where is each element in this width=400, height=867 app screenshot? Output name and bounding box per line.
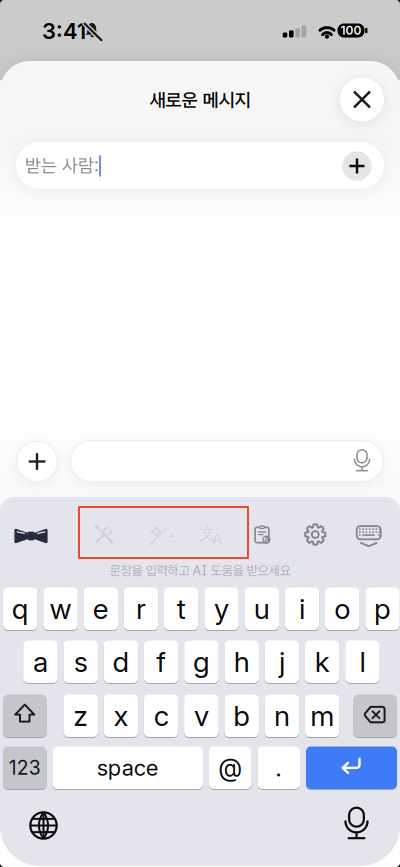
staticText: x <box>113 699 128 733</box>
staticText: s <box>74 645 88 679</box>
button[interactable]: 文 <box>191 514 231 554</box>
button[interactable]: e <box>83 587 118 630</box>
staticText: h <box>234 645 250 679</box>
button[interactable]: . <box>257 746 300 789</box>
button[interactable]: 받는 사람: <box>16 142 384 189</box>
button[interactable] <box>84 514 124 554</box>
staticText: A <box>264 535 269 544</box>
staticText: . <box>275 753 282 782</box>
button[interactable]: t <box>164 587 198 630</box>
staticText: 100 <box>340 23 361 38</box>
staticText: space <box>97 754 159 781</box>
button[interactable]: j <box>265 640 299 683</box>
button[interactable] <box>16 441 58 482</box>
button[interactable]: g <box>184 640 219 683</box>
staticText: f <box>156 645 166 679</box>
button[interactable]: b <box>224 694 259 737</box>
button[interactable] <box>3 694 46 737</box>
button[interactable]: w <box>43 587 78 630</box>
staticText: y <box>214 592 229 626</box>
staticText: 3:41 <box>42 18 86 44</box>
button[interactable]: p <box>365 587 400 630</box>
staticText: k <box>315 645 330 679</box>
button[interactable]: s <box>63 640 98 683</box>
button[interactable]: k <box>305 640 339 683</box>
button[interactable]: d <box>104 640 138 683</box>
button[interactable]: i <box>285 587 319 630</box>
staticText: e <box>93 592 109 626</box>
button[interactable]: h <box>224 640 259 683</box>
staticText: 받는 사람: <box>25 154 99 177</box>
button[interactable]: a <box>23 640 58 683</box>
button[interactable]: c <box>144 694 178 737</box>
button[interactable] <box>295 514 335 554</box>
staticText: b <box>233 699 250 733</box>
staticText: t <box>177 592 186 626</box>
staticText: p <box>374 592 391 626</box>
staticText: d <box>112 645 129 679</box>
staticText: m <box>310 699 334 733</box>
staticText: @ <box>218 753 242 783</box>
button[interactable] <box>9 518 53 554</box>
staticText: A <box>212 530 222 548</box>
button[interactable]: x <box>104 694 138 737</box>
button[interactable]: v <box>184 694 219 737</box>
staticText: n <box>274 699 290 733</box>
button[interactable]: A <box>242 515 282 555</box>
staticText: j <box>279 645 285 679</box>
button[interactable] <box>336 803 376 845</box>
button[interactable]: f <box>144 640 178 683</box>
button[interactable]: @ <box>209 746 251 789</box>
button[interactable]: r <box>124 587 158 630</box>
button[interactable] <box>23 805 63 845</box>
button[interactable] <box>342 151 372 181</box>
staticText: u <box>254 592 270 626</box>
button[interactable]: y <box>204 587 239 630</box>
button[interactable]: o <box>325 587 359 630</box>
staticText: z <box>73 699 88 733</box>
staticText: 문장을 입력하고 AI 도움을 받으세요 <box>109 562 290 578</box>
button[interactable]: space <box>52 746 203 789</box>
staticText: i <box>299 592 305 626</box>
button[interactable]: z <box>63 694 98 737</box>
button[interactable] <box>347 517 391 557</box>
staticText: c <box>154 699 169 733</box>
staticText: l <box>359 645 365 679</box>
staticText: v <box>194 699 209 733</box>
staticText: w <box>49 592 71 626</box>
staticText: o <box>334 592 350 626</box>
button[interactable] <box>138 514 178 554</box>
button[interactable] <box>340 77 384 121</box>
button[interactable]: m <box>305 694 339 737</box>
button[interactable]: u <box>244 587 279 630</box>
staticText: 123 <box>9 756 41 779</box>
button[interactable]: 123 <box>3 746 46 789</box>
button[interactable] <box>306 746 397 789</box>
staticText: q <box>12 592 29 626</box>
button[interactable]: q <box>3 587 37 630</box>
staticText: a <box>33 645 48 679</box>
staticText: r <box>136 592 146 626</box>
staticText: 새로운 메시지 <box>149 89 250 111</box>
staticText: g <box>193 645 210 679</box>
staticText: 文 <box>199 523 216 544</box>
button[interactable] <box>70 440 384 482</box>
button[interactable] <box>353 694 397 737</box>
button[interactable]: l <box>345 640 380 683</box>
button[interactable]: n <box>265 694 299 737</box>
